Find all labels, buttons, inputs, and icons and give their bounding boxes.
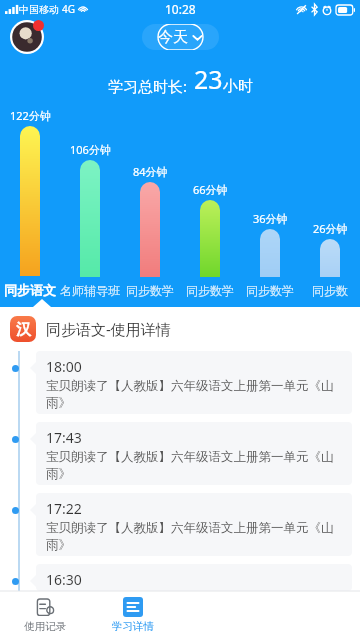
staticText: 名师辅导班	[60, 283, 120, 298]
button[interactable]: 今天	[142, 24, 219, 50]
staticText: 同步语文	[4, 282, 56, 298]
button[interactable]	[200, 200, 220, 277]
staticText: 23	[194, 62, 223, 96]
staticText: 小时	[223, 77, 253, 96]
staticText: 84分钟	[133, 164, 168, 179]
staticText: 同步语文-使用详情	[46, 319, 171, 339]
staticText: 18:00	[46, 357, 82, 376]
staticText: 中国移动	[19, 3, 59, 16]
staticText: 16:30	[46, 570, 82, 589]
staticText: 17:43	[46, 428, 82, 447]
button[interactable]: 使用记录	[14, 591, 76, 639]
staticText: 10:28	[165, 1, 196, 17]
staticText: 宝贝朗读了【人教版】六年级语文上册第一单元《山雨》	[46, 378, 352, 410]
staticText: 宝贝朗读了【人教版】六年级语文上册第一单元《山雨》	[46, 449, 352, 481]
button[interactable]	[80, 160, 100, 277]
button[interactable]: 学习详情	[102, 591, 164, 639]
staticText: 同步数学	[246, 283, 294, 298]
button[interactable]: 汉	[0, 307, 360, 351]
button[interactable]: 18:00	[0, 351, 360, 422]
staticText: 106分钟	[70, 142, 111, 157]
staticText: 今天	[158, 28, 188, 47]
staticText: 学习详情	[112, 620, 154, 633]
staticText: 17:22	[46, 499, 82, 518]
staticText: 36分钟	[253, 211, 288, 226]
staticText: 26分钟	[313, 221, 348, 236]
button[interactable]	[260, 229, 280, 277]
staticText: 同步数学	[186, 283, 234, 298]
staticText: 宝贝朗读了【人教版】六年级语文上册第一单元《山雨》	[46, 520, 352, 552]
staticText: 同步数	[312, 283, 348, 298]
button[interactable]: 17:43	[0, 422, 360, 493]
button[interactable]	[320, 239, 340, 277]
staticText: 同步数学	[126, 283, 174, 298]
staticText: 使用记录	[24, 620, 66, 633]
staticText: 122分钟	[10, 108, 51, 123]
staticText: 4G	[62, 2, 75, 16]
button[interactable]	[20, 126, 40, 276]
staticText: 汉	[16, 320, 31, 339]
button[interactable]: 16:30	[0, 564, 360, 591]
button[interactable]	[140, 182, 160, 277]
button[interactable]: Profile	[10, 20, 44, 54]
staticText: 66分钟	[193, 182, 228, 197]
staticText: 学习总时长:	[108, 76, 188, 96]
button[interactable]: 17:22	[0, 493, 360, 564]
